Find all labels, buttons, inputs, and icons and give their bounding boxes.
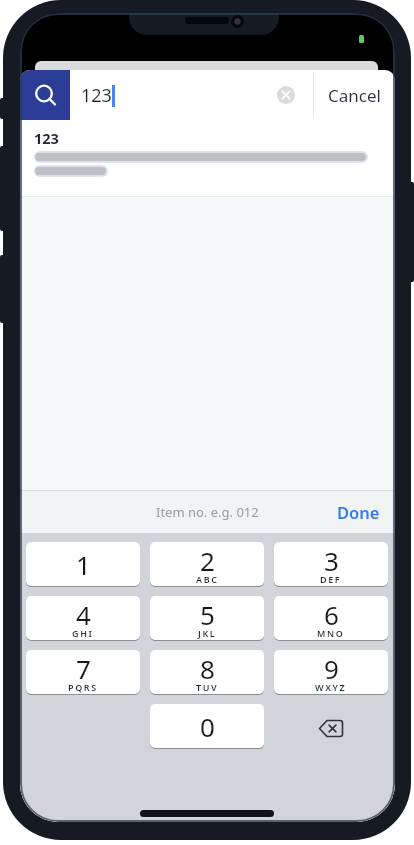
button[interactable]: 2 xyxy=(150,542,264,586)
button[interactable]: 8 xyxy=(150,650,264,694)
button[interactable]: 9 xyxy=(274,650,388,694)
staticText: GHI xyxy=(72,627,94,639)
staticText: WXYZ xyxy=(315,681,347,693)
staticText: JKL xyxy=(198,627,217,639)
staticText: 4 xyxy=(76,597,91,632)
button[interactable]: 4 xyxy=(26,596,140,640)
staticText: DEF xyxy=(320,573,342,585)
staticText: 123 xyxy=(34,128,59,148)
button[interactable] xyxy=(274,704,388,748)
button[interactable]: 123 xyxy=(20,120,395,197)
staticText: 7 xyxy=(76,651,91,686)
button[interactable]: 3 xyxy=(274,542,388,586)
staticText: 6 xyxy=(324,597,339,632)
staticText: 8 xyxy=(200,651,215,686)
button[interactable] xyxy=(20,70,70,120)
button[interactable]: 0 xyxy=(150,704,264,748)
staticText: MNO xyxy=(317,627,345,639)
staticText: 5 xyxy=(200,597,215,632)
button[interactable]: 123 xyxy=(70,70,313,120)
staticText: 3 xyxy=(324,543,339,578)
staticText: 0 xyxy=(200,709,215,744)
button[interactable]: 5 xyxy=(150,596,264,640)
staticText: PQRS xyxy=(68,681,98,693)
staticText: ABC xyxy=(196,573,219,585)
button[interactable]: 1 xyxy=(26,542,140,586)
button[interactable]: 7 xyxy=(26,650,140,694)
button[interactable]: Cancel xyxy=(314,70,395,120)
staticText: 123 xyxy=(81,83,112,108)
button[interactable]: 6 xyxy=(274,596,388,640)
staticText: 2 xyxy=(200,543,215,578)
staticText: 9 xyxy=(324,651,339,686)
button[interactable]: Done xyxy=(337,501,380,523)
staticText: Item no. e.g. 012 xyxy=(156,503,259,521)
staticText: Cancel xyxy=(328,84,381,107)
staticText: TUV xyxy=(196,681,219,693)
staticText: 1 xyxy=(76,547,91,582)
staticText: Done xyxy=(337,501,380,523)
